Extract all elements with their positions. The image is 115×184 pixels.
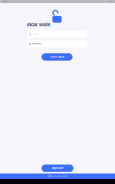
button[interactable]: ¿Olvidaste tu contraseña? xyxy=(0,173,115,179)
button[interactable]: Iniciar sesión xyxy=(41,53,72,61)
staticText: Iniciar sesión xyxy=(50,56,64,58)
staticText: usuario xyxy=(32,33,38,35)
staticText: ▪▪▪ xyxy=(109,0,112,3)
button[interactable]: Registrarse xyxy=(41,164,73,172)
staticText: ¿Olvidaste tu contraseña? xyxy=(47,175,68,177)
staticText: Iniciar sesión xyxy=(27,22,50,27)
staticText: 9:41 xyxy=(2,0,6,3)
staticText: Registrarse xyxy=(52,167,63,169)
